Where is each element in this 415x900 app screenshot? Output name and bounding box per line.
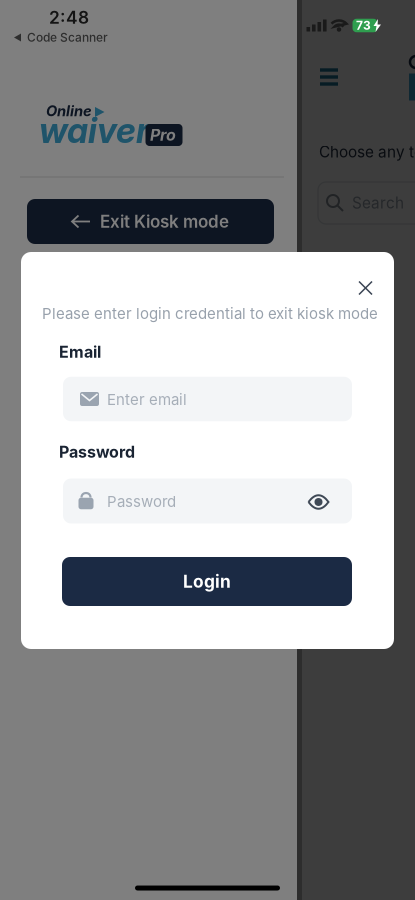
staticText: 73 bbox=[356, 18, 371, 33]
staticText: Email bbox=[59, 342, 101, 362]
staticText: Please enter login credential to exit ki… bbox=[42, 304, 378, 322]
button[interactable]: Back to Code Scanner bbox=[0, 24, 130, 50]
button[interactable]: Show password bbox=[301, 485, 335, 519]
button[interactable]: Menu bbox=[313, 62, 345, 92]
button[interactable]: Close bbox=[348, 271, 382, 305]
staticText: waiver bbox=[39, 109, 149, 151]
staticText: 2:48 bbox=[49, 7, 89, 28]
staticText: Password bbox=[107, 492, 176, 510]
staticText: Code Scanner bbox=[27, 30, 108, 45]
staticText: Login bbox=[183, 571, 231, 592]
staticText: Choose any temp bbox=[319, 143, 415, 161]
staticText: Exit Kiosk mode bbox=[100, 211, 229, 232]
staticText: Online bbox=[46, 102, 92, 120]
staticText: Search bbox=[352, 194, 404, 212]
staticText: Pro bbox=[150, 125, 176, 145]
button[interactable]: Exit Kiosk mode bbox=[27, 199, 274, 244]
staticText: Password bbox=[59, 442, 135, 462]
staticText: Enter email bbox=[107, 390, 187, 408]
button[interactable]: Login bbox=[62, 557, 352, 606]
